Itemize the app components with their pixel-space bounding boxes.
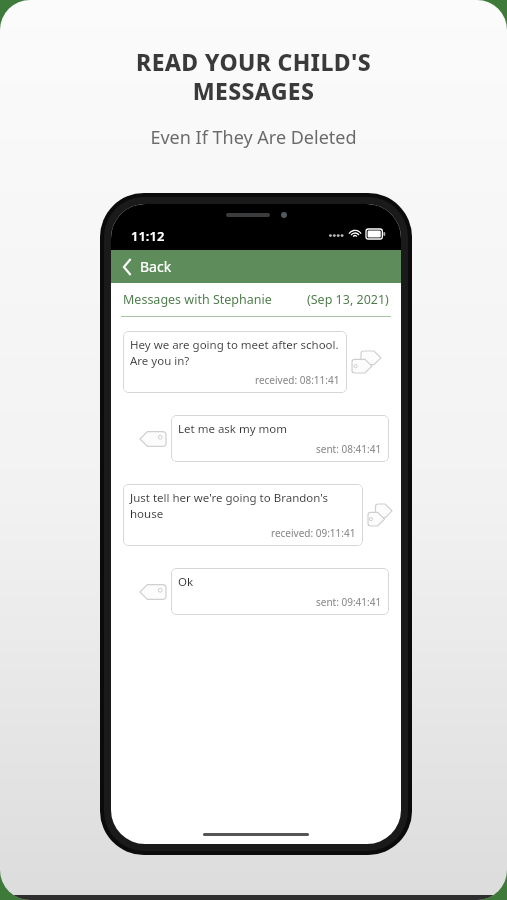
button[interactable]: Hey we are going to meet after school. A… <box>123 331 393 393</box>
staticText: (Sep 13, 2021) <box>307 291 389 308</box>
button[interactable]: Message tag <box>119 415 389 462</box>
staticText: Hey we are going to meet after school. A… <box>130 337 339 368</box>
other: Message tag <box>140 430 166 448</box>
other: Message tag <box>140 583 166 601</box>
other: Message tag <box>368 504 393 526</box>
staticText: sent: 08:41:41 <box>316 442 382 456</box>
staticText: Back <box>140 257 172 276</box>
button[interactable]: Just tell her we're going to Brandon's h… <box>123 484 393 546</box>
staticText: Just tell her we're going to Brandon's h… <box>130 490 356 521</box>
staticText: Even If They Are Deleted <box>150 125 357 150</box>
staticText: received: 09:11:41 <box>271 526 356 540</box>
staticText: READ YOUR CHILD'S MESSAGES <box>136 46 371 107</box>
other: Message tag <box>352 351 382 373</box>
button[interactable]: Back <box>111 250 401 283</box>
staticText: 11:12 <box>131 227 165 245</box>
staticText: sent: 09:41:41 <box>316 595 382 609</box>
staticText: Messages with Stephanie <box>123 291 272 308</box>
staticText: Ok <box>178 574 194 590</box>
button[interactable]: Message tag <box>119 568 389 615</box>
staticText: Let me ask my mom <box>178 421 288 437</box>
staticText: received: 08:11:41 <box>255 373 340 387</box>
